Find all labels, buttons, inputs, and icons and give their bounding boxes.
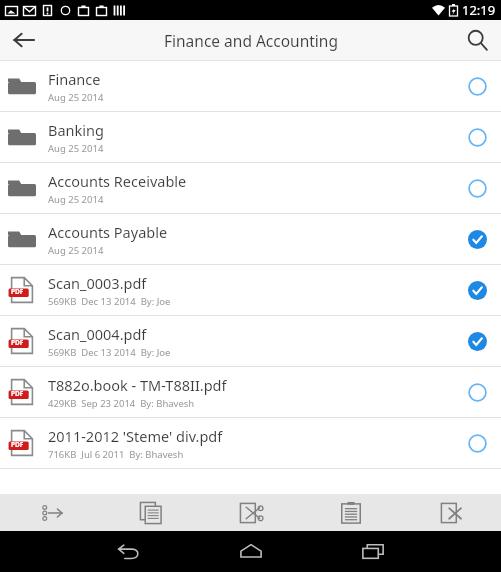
button[interactable]: Delete <box>401 494 501 531</box>
button[interactable]: Paste <box>301 494 401 531</box>
button[interactable]: Accounts Receivable <box>0 163 501 214</box>
button[interactable]: PDF <box>0 265 501 316</box>
button[interactable]: PDF <box>0 367 501 418</box>
staticText: Banking <box>48 120 104 140</box>
button[interactable]: Select <box>457 66 497 106</box>
button[interactable]: PDF <box>0 418 501 469</box>
button[interactable]: Select <box>457 423 497 463</box>
button[interactable]: Search <box>453 20 501 60</box>
button[interactable]: Finance <box>0 61 501 112</box>
staticText: 2011-2012 'Steme' div.pdf <box>48 426 223 446</box>
staticText: PDF <box>11 440 24 449</box>
button[interactable]: Cut <box>201 494 301 531</box>
staticText: Finance <box>48 69 101 89</box>
staticText: PDF <box>11 338 24 347</box>
button[interactable]: Copy <box>101 494 201 531</box>
staticText: T882o.book - TM-T88II.pdf <box>48 375 227 395</box>
button[interactable]: Move <box>0 494 101 531</box>
staticText: 12:19 <box>462 1 496 19</box>
button[interactable]: Selected <box>457 219 497 259</box>
staticText: 716KB Jul 6 2011 By: Bhavesh <box>48 448 184 461</box>
staticText: 569KB Dec 13 2014 By: Joe <box>48 346 171 359</box>
button[interactable]: Banking <box>0 112 501 163</box>
staticText: PDF <box>11 389 24 398</box>
staticText: 429KB Sep 23 2014 By: Bhavesh <box>48 397 195 410</box>
staticText: Scan_0003.pdf <box>48 273 147 293</box>
button[interactable]: Select <box>457 168 497 208</box>
staticText: Aug 25 2014 <box>48 142 104 155</box>
button[interactable]: Accounts Payable <box>0 214 501 265</box>
button[interactable]: Select <box>457 372 497 412</box>
button[interactable]: Back <box>68 531 190 572</box>
button[interactable]: Selected <box>457 270 497 310</box>
staticText: Accounts Payable <box>48 222 168 242</box>
button[interactable]: Recents <box>312 531 434 572</box>
staticText: Finance and Accounting <box>164 30 338 51</box>
staticText: Aug 25 2014 <box>48 244 104 257</box>
staticText: PDF <box>11 287 24 296</box>
button[interactable]: Home <box>190 531 312 572</box>
staticText: Accounts Receivable <box>48 171 187 191</box>
staticText: 569KB Dec 13 2014 By: Joe <box>48 295 171 308</box>
button[interactable]: PDF <box>0 316 501 367</box>
button[interactable]: Select <box>457 117 497 157</box>
button[interactable]: Back <box>0 20 48 60</box>
staticText: Aug 25 2014 <box>48 91 104 104</box>
button[interactable]: Selected <box>457 321 497 361</box>
staticText: Scan_0004.pdf <box>48 324 147 344</box>
staticText: Aug 25 2014 <box>48 193 104 206</box>
